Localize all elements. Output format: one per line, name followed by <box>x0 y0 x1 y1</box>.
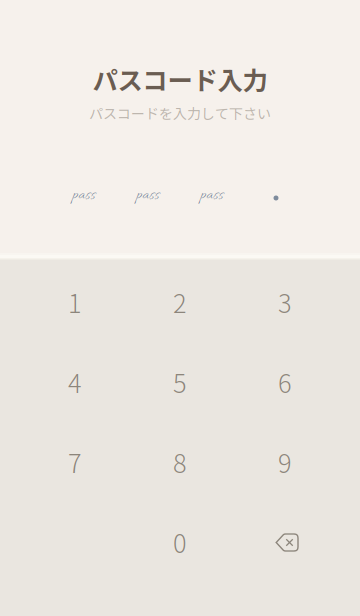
staticText: 3 <box>278 284 292 320</box>
staticText: pass <box>72 185 95 205</box>
staticText: 6 <box>278 364 292 400</box>
button[interactable]: 5 <box>127 342 232 422</box>
staticText: パスコードを入力して下さい <box>89 103 271 123</box>
staticText: 4 <box>68 364 82 400</box>
button[interactable]: 7 <box>22 422 127 502</box>
staticText: 2 <box>173 284 187 320</box>
button[interactable]: 4 <box>22 342 127 422</box>
button[interactable]: Delete <box>232 502 337 582</box>
button[interactable]: 3 <box>232 262 337 342</box>
staticText: 5 <box>173 364 187 400</box>
button[interactable]: 9 <box>232 422 337 502</box>
button[interactable]: 2 <box>127 262 232 342</box>
staticText: 1 <box>68 284 82 320</box>
staticText: 7 <box>68 444 82 480</box>
staticText: 0 <box>173 524 187 560</box>
staticText: pass <box>200 185 223 205</box>
button[interactable]: 0 <box>127 502 232 582</box>
staticText: pass <box>136 185 159 205</box>
staticText: 8 <box>173 444 187 480</box>
button[interactable]: 6 <box>232 342 337 422</box>
staticText: 9 <box>278 444 292 480</box>
button[interactable]: 8 <box>127 422 232 502</box>
button[interactable]: 1 <box>22 262 127 342</box>
staticText: パスコード入力 <box>92 61 267 97</box>
